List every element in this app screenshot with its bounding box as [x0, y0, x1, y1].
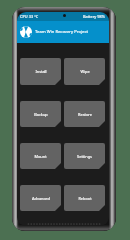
- button[interactable]: Mount: [20, 143, 61, 169]
- button[interactable]: Settings: [64, 143, 105, 169]
- staticText: Battery 98%: [83, 14, 106, 19]
- staticText: Advanced: [32, 196, 50, 201]
- staticText: Settings: [77, 154, 92, 159]
- button[interactable]: Reboot: [64, 185, 105, 211]
- button[interactable]: Restore: [64, 101, 105, 127]
- staticText: Mount: [34, 154, 47, 159]
- staticText: Install: [35, 69, 47, 74]
- staticText: Team Win Recovery Project: [35, 29, 88, 35]
- staticText: Wipe: [80, 69, 90, 74]
- staticText: CPU 33 °C: [20, 14, 39, 19]
- staticText: Backup: [34, 112, 48, 117]
- button[interactable]: Wipe: [64, 58, 105, 85]
- button[interactable]: Install: [20, 58, 61, 85]
- staticText: Reboot: [78, 196, 92, 201]
- button[interactable]: Advanced: [20, 185, 61, 211]
- button[interactable]: Backup: [20, 101, 61, 127]
- staticText: Restore: [78, 112, 92, 117]
- other: TWRP logo: [20, 26, 32, 38]
